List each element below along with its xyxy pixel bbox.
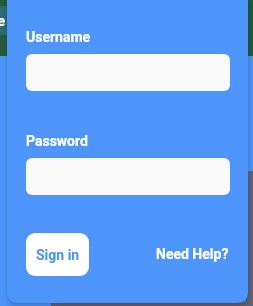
button[interactable]: Sign in	[26, 233, 89, 276]
staticText: Password	[26, 133, 88, 149]
staticText: e	[0, 12, 6, 30]
button[interactable]: Need Help?	[129, 239, 229, 269]
staticText: Need Help?	[156, 246, 229, 262]
staticText: Sign in	[36, 247, 80, 263]
button[interactable]: Username input	[26, 54, 230, 91]
button[interactable]: Password input	[26, 158, 230, 195]
staticText: Username	[26, 29, 91, 45]
